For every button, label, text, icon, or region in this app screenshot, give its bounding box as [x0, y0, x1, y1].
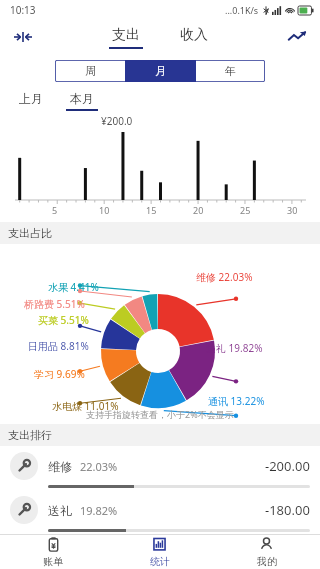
staticText: 本月 [70, 91, 94, 106]
staticText: -200.00 [265, 457, 310, 475]
staticText: 收入 [180, 26, 208, 44]
staticText: 我的 [257, 555, 277, 568]
staticText: 月 [155, 64, 166, 78]
button[interactable]: 送礼 [0, 490, 320, 534]
staticText: 维修 22.03% [196, 270, 253, 284]
button[interactable]: Trend chart [282, 22, 312, 52]
staticText: 5 [52, 204, 58, 216]
staticText: 周 [85, 64, 96, 78]
staticText: ...0.1K/s [225, 4, 259, 16]
staticText: 支出 [112, 26, 140, 44]
staticText: 支持手指旋转查看，小于2%不会显示 [86, 408, 234, 420]
button[interactable]: 月 [126, 60, 195, 82]
button[interactable]: Collapse [8, 22, 38, 52]
button[interactable]: 年 [196, 60, 265, 82]
button[interactable]: 本月 [64, 91, 100, 111]
staticText: 送礼 [48, 503, 72, 518]
button[interactable]: 账单 [0, 535, 106, 569]
button[interactable]: 支出 [99, 26, 153, 49]
staticText: 10:13 [10, 3, 36, 17]
staticText: 账单 [43, 555, 63, 568]
staticText: 维修 [48, 459, 72, 474]
staticText: 上月 [19, 91, 43, 106]
staticText: 统计 [150, 555, 170, 568]
staticText: 支出占比 [8, 226, 52, 240]
button[interactable]: 我的 [213, 535, 320, 569]
staticText: 20 [193, 204, 204, 216]
staticText: 支出排行 [8, 428, 52, 442]
button[interactable]: 上月 [14, 91, 48, 111]
staticText: 22.03% [80, 459, 118, 474]
button[interactable]: 统计 [106, 535, 213, 569]
staticText: 25 [240, 204, 251, 216]
button[interactable]: 周 [55, 60, 125, 82]
staticText: 通讯 13.22% [208, 394, 265, 408]
staticText: 水果 4.41% [48, 280, 99, 294]
staticText: 19.82% [80, 503, 118, 518]
staticText: 30 [287, 204, 298, 216]
button[interactable]: 收入 [167, 26, 221, 49]
staticText: 学习 9.69% [34, 367, 85, 381]
button[interactable]: 维修 [0, 446, 320, 490]
staticText: 水电煤 11.01% [52, 399, 119, 413]
staticText: 年 [225, 64, 236, 78]
staticText: 日用品 8.81% [28, 339, 89, 353]
staticText: 桥路费 5.51% [24, 297, 85, 311]
staticText: 10 [99, 204, 110, 216]
staticText: -180.00 [265, 501, 310, 519]
staticText: 买菜 5.51% [38, 313, 89, 327]
staticText: 送礼 19.82% [206, 341, 263, 355]
staticText: 15 [146, 204, 157, 216]
staticText: ¥200.0 [101, 114, 133, 128]
